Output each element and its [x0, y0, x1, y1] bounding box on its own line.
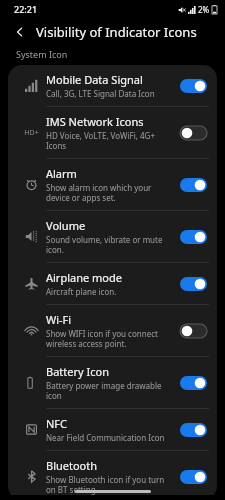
staticText: Visibility of Indicator Icons	[36, 23, 197, 41]
button[interactable]: Toggle on	[180, 79, 207, 93]
staticText: Battery Icon	[46, 364, 109, 379]
staticText: Show Bluetooth icon if you turn on BT se…	[46, 474, 174, 495]
staticText: Battery power image drawable icon	[46, 380, 174, 401]
button[interactable]: Volume	[8, 211, 217, 262]
staticText: Wi-Fi	[46, 312, 72, 327]
button[interactable]: Bluetooth	[8, 451, 217, 500]
staticText: Alarm	[46, 166, 77, 181]
button[interactable]: Toggle on	[180, 230, 207, 244]
staticText: Aircraft plane icon.	[46, 286, 117, 297]
button[interactable]: Toggle off	[180, 126, 207, 140]
button[interactable]: Battery Icon	[8, 357, 217, 408]
button[interactable]: Toggle on	[180, 470, 207, 484]
staticText: HD Voice, VoLTE, VoWiFi, 4G+ Icons	[46, 130, 174, 151]
staticText: 2%	[198, 4, 210, 15]
button[interactable]: Mobile Data Signal	[8, 65, 217, 106]
staticText: Sound volume, vibrate or mute icon.	[46, 234, 174, 255]
staticText: IMS Network Icons	[46, 114, 144, 129]
staticText: Call, 3G, LTE Signal Data Icon	[46, 88, 155, 99]
button[interactable]: Toggle on	[180, 423, 207, 437]
staticText: Mobile Data Signal	[46, 72, 143, 87]
staticText: Airplane mode	[46, 270, 122, 285]
button[interactable]: Toggle on	[180, 178, 207, 192]
staticText: Near Field Communication Icon	[46, 432, 165, 443]
staticText: Volume	[46, 218, 86, 233]
button[interactable]: Airplane mode	[8, 263, 217, 304]
staticText: System Icon	[16, 48, 68, 60]
button[interactable]: Back	[10, 22, 30, 42]
staticText: HD+	[24, 128, 39, 138]
button[interactable]: Wi-Fi	[8, 305, 217, 356]
button[interactable]: HD+	[8, 107, 217, 158]
staticText: Show WIFI icon if you connect wireless a…	[46, 328, 174, 349]
button[interactable]: Toggle on	[180, 376, 207, 390]
button[interactable]: Toggle on	[180, 277, 207, 291]
staticText: Bluetooth	[46, 458, 98, 473]
staticText: 22:21	[14, 3, 38, 15]
staticText: NFC	[46, 416, 68, 431]
button[interactable]: Toggle off	[180, 324, 207, 338]
button[interactable]: NFC	[8, 409, 217, 450]
button[interactable]: Alarm	[8, 159, 217, 210]
staticText: Show alarm icon which your device or app…	[46, 182, 174, 203]
